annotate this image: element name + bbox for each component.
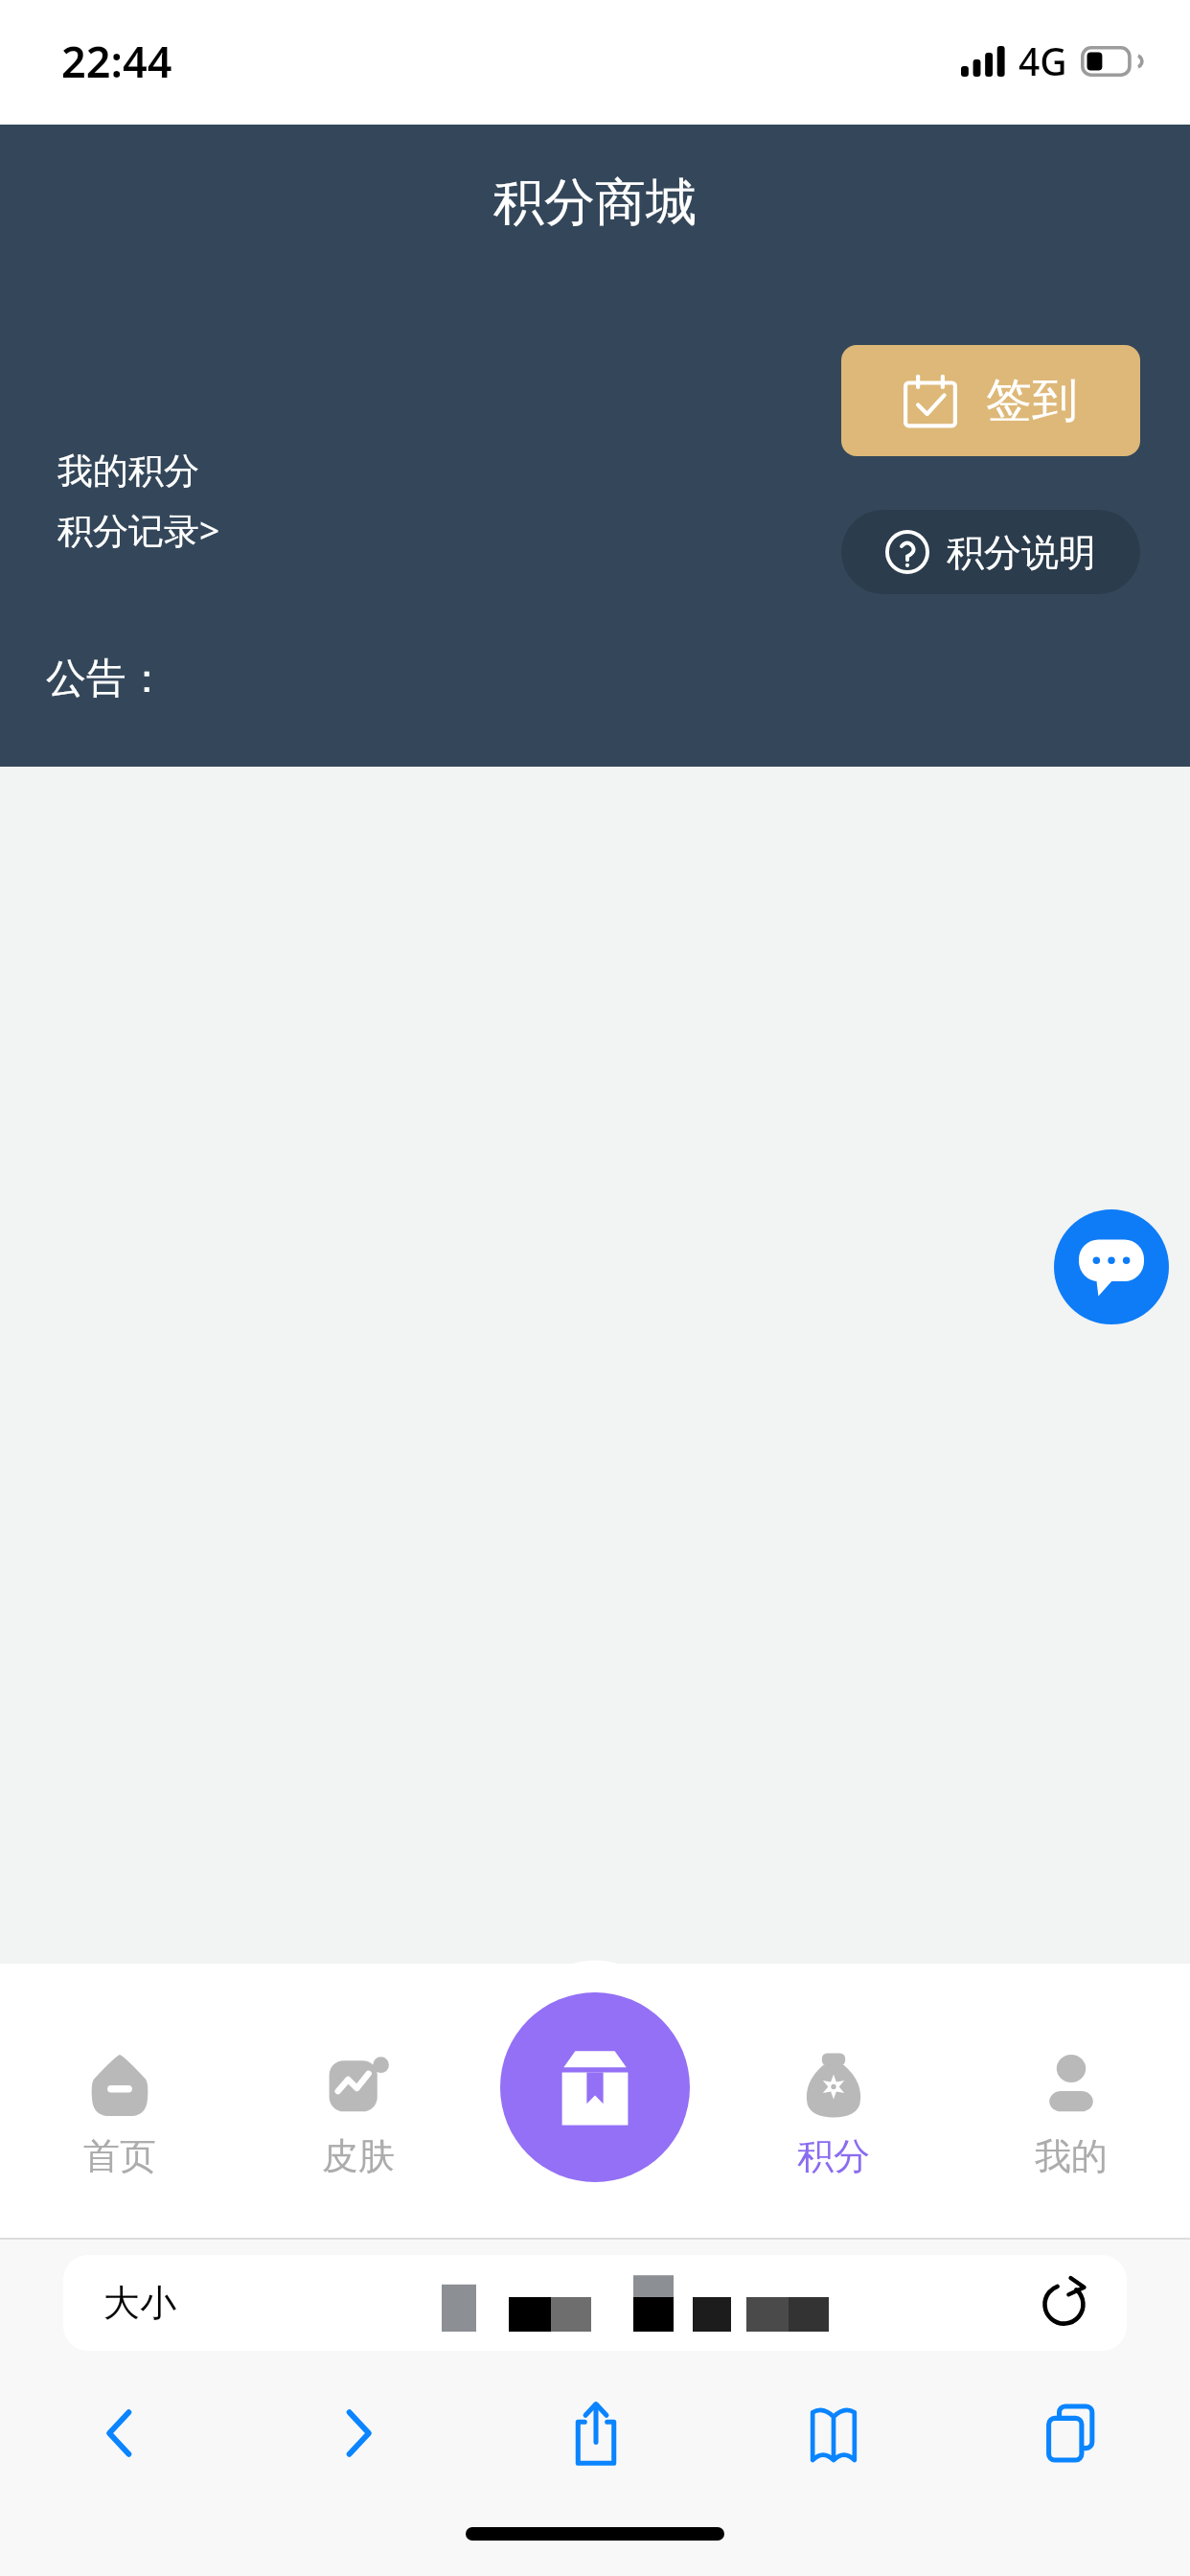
button[interactable]: 商品	[500, 1992, 690, 2182]
button[interactable]: 积分记录>	[57, 505, 220, 554]
button[interactable]: 皮肤	[239, 1995, 477, 2238]
button[interactable]: 首页	[0, 1995, 239, 2238]
button[interactable]: 积分说明	[841, 510, 1140, 594]
staticText: 积分说明	[947, 529, 1096, 576]
button[interactable]: 在线客服	[1054, 1209, 1169, 1324]
button[interactable]: 签到	[841, 345, 1140, 456]
button[interactable]: 重新载入	[1039, 2277, 1090, 2329]
staticText: 签到	[986, 372, 1078, 429]
button[interactable]: 积分	[715, 1995, 952, 2238]
button[interactable]: 我的	[952, 1995, 1190, 2238]
staticText: 积分商城	[493, 171, 697, 235]
staticText: 公告：	[46, 654, 167, 704]
staticText: 22:44	[61, 32, 172, 90]
staticText: 积分	[797, 2133, 870, 2179]
staticText: 首页	[83, 2133, 156, 2179]
staticText: 我的积分	[57, 448, 199, 494]
button[interactable]: 分享	[477, 2366, 715, 2500]
staticText: 我的	[1035, 2133, 1108, 2179]
staticText: 4G	[1018, 35, 1067, 86]
button[interactable]: 前进	[239, 2366, 477, 2500]
button[interactable]: 标签页	[952, 2366, 1190, 2500]
button[interactable]: 后退	[0, 2366, 239, 2500]
button[interactable]: 大小	[63, 2255, 1127, 2351]
staticText: 大小	[103, 2280, 176, 2326]
staticText: 皮肤	[322, 2133, 395, 2179]
button[interactable]: 书签	[715, 2366, 952, 2500]
